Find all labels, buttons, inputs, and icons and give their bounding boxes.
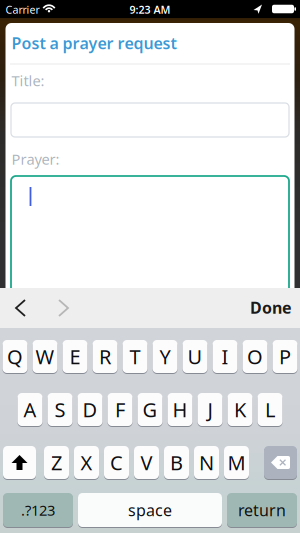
staticText: I — [221, 343, 228, 370]
staticText: C — [110, 449, 123, 476]
staticText: P — [279, 343, 291, 370]
button[interactable]: J — [197, 392, 222, 426]
button[interactable]: U — [182, 339, 207, 373]
button[interactable]: H — [167, 392, 192, 426]
button[interactable]: T — [122, 339, 147, 373]
button[interactable]: M — [224, 445, 249, 479]
staticText: Done — [250, 297, 292, 318]
button[interactable]: B — [164, 445, 189, 479]
staticText: S — [54, 396, 65, 423]
staticText: K — [234, 396, 246, 423]
staticText: N — [199, 449, 214, 476]
staticText: D — [82, 396, 97, 423]
button[interactable]: R — [92, 339, 117, 373]
staticText: A — [23, 396, 36, 423]
button[interactable]: Q — [2, 339, 27, 373]
button[interactable]: P — [272, 339, 297, 373]
staticText: G — [142, 396, 157, 423]
button[interactable]: I — [212, 339, 237, 373]
button[interactable]: Title — [11, 103, 289, 137]
button[interactable]: Delete — [264, 445, 297, 479]
staticText: T — [129, 343, 140, 370]
staticText: Post a prayer request — [11, 32, 176, 54]
staticText: Y — [159, 343, 170, 370]
staticText: space — [128, 499, 172, 521]
button[interactable]: E — [62, 339, 87, 373]
staticText: E — [69, 343, 80, 370]
button[interactable]: W — [32, 339, 57, 373]
button[interactable]: Shift — [3, 445, 36, 479]
staticText: V — [140, 449, 152, 476]
button[interactable]: Y — [152, 339, 177, 373]
staticText: B — [170, 449, 183, 476]
button[interactable]: A — [17, 392, 42, 426]
staticText: Z — [51, 449, 62, 476]
button[interactable]: K — [227, 392, 252, 426]
staticText: Prayer: — [11, 149, 59, 169]
staticText: U — [187, 343, 202, 370]
staticText: 9:23 AM — [129, 2, 170, 17]
staticText: F — [115, 396, 125, 423]
button[interactable]: L — [257, 392, 282, 426]
button[interactable]: G — [137, 392, 162, 426]
button[interactable]: Next field — [51, 296, 75, 320]
button[interactable]: return — [227, 492, 297, 527]
button[interactable]: D — [77, 392, 102, 426]
button[interactable]: .?123 — [3, 492, 73, 527]
staticText: .?123 — [21, 500, 55, 520]
staticText: H — [172, 396, 187, 423]
staticText: W — [35, 343, 54, 370]
button[interactable]: N — [194, 445, 219, 479]
button[interactable]: Previous field — [8, 296, 32, 320]
button[interactable]: X — [74, 445, 99, 479]
staticText: return — [238, 499, 286, 521]
staticText: M — [227, 449, 245, 476]
staticText: Q — [7, 343, 23, 370]
button[interactable]: F — [107, 392, 132, 426]
button[interactable]: Done — [250, 297, 292, 318]
staticText: Title: — [11, 71, 44, 90]
button[interactable]: C — [104, 445, 129, 479]
button[interactable]: O — [242, 339, 267, 373]
staticText: Carrier — [5, 2, 39, 17]
button[interactable]: Prayer — [11, 176, 289, 300]
staticText: O — [247, 343, 263, 370]
staticText: R — [99, 343, 111, 370]
staticText: J — [207, 396, 212, 423]
button[interactable]: Z — [44, 445, 69, 479]
staticText: L — [265, 396, 275, 423]
button[interactable]: space — [78, 492, 222, 527]
button[interactable]: V — [134, 445, 159, 479]
staticText: X — [80, 449, 92, 476]
button[interactable]: S — [47, 392, 72, 426]
